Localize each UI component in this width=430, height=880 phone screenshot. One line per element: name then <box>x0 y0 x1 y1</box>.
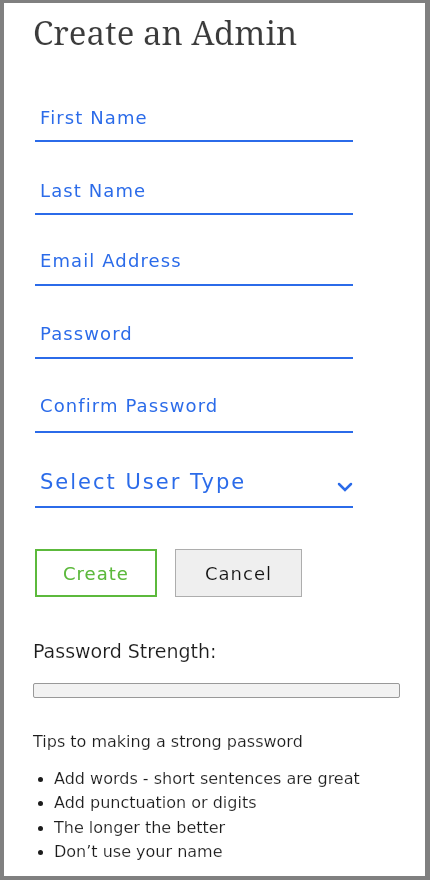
staticText: Password Strength: <box>33 640 217 662</box>
staticText: Don’t use your name <box>54 842 223 861</box>
staticText: Tips to making a strong password <box>33 732 303 751</box>
staticText: Confirm Password <box>40 395 219 416</box>
button[interactable]: Select User Type <box>35 468 353 508</box>
staticText: Email Address <box>40 250 182 271</box>
staticText: Create an Admin <box>33 10 298 55</box>
staticText: Add punctuation or digits <box>54 793 257 812</box>
button[interactable]: Password <box>35 323 353 359</box>
staticText: Create <box>63 563 129 584</box>
staticText: Select User Type <box>40 470 247 494</box>
button[interactable]: Create <box>35 549 157 597</box>
staticText: Cancel <box>205 563 272 584</box>
staticText: Password <box>40 323 133 344</box>
button[interactable]: First Name <box>35 107 353 142</box>
staticText: Last Name <box>40 180 147 201</box>
staticText: First Name <box>40 107 148 128</box>
button[interactable]: Last Name <box>35 180 353 215</box>
button[interactable]: Confirm Password <box>35 395 353 433</box>
staticText: The longer the better <box>54 818 226 837</box>
button[interactable]: Cancel <box>175 549 302 597</box>
button[interactable]: Email Address <box>35 250 353 286</box>
staticText: Add words - short sentences are great <box>54 769 360 788</box>
